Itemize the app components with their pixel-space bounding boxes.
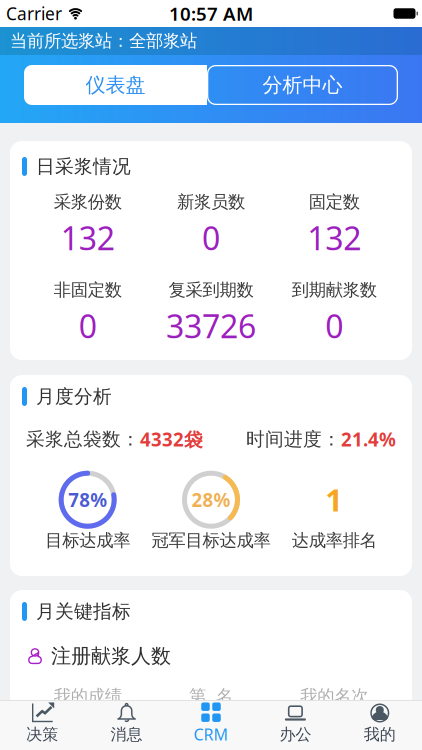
button[interactable]: 分析中心 <box>207 65 398 105</box>
staticText: 非固定数 <box>54 279 122 301</box>
staticText: 0 <box>325 305 343 347</box>
staticText: 冠军目标达成率 <box>151 530 270 551</box>
staticText: 1 <box>325 479 343 520</box>
staticText: 28% <box>191 487 230 512</box>
staticText: 78% <box>68 487 107 512</box>
staticText: 办公 <box>279 724 311 744</box>
staticText: 达成率排名 <box>292 530 377 551</box>
staticText: Carrier <box>6 2 62 25</box>
staticText: 仪表盘 <box>85 73 145 97</box>
staticText: 4332袋 <box>140 427 203 452</box>
staticText: 采浆总袋数： <box>26 428 140 451</box>
staticText: 注册献浆人数 <box>51 644 171 668</box>
staticText: 新浆员数 <box>177 191 245 213</box>
staticText: 33726 <box>166 305 256 347</box>
staticText: 0 <box>79 305 97 347</box>
button[interactable]: 办公 <box>253 703 338 744</box>
staticText: 复采到期数 <box>168 279 253 301</box>
staticText: 132 <box>307 217 361 259</box>
button[interactable]: 仪表盘 <box>24 65 207 105</box>
staticText: 我的成绩 <box>54 685 122 707</box>
staticText: 时间进度： <box>246 428 341 451</box>
staticText: 当前所选浆站：全部浆站 <box>10 30 197 52</box>
staticText: 决策 <box>26 724 58 744</box>
staticText: 月关键指标 <box>36 600 131 623</box>
staticText: 分析中心 <box>262 73 342 97</box>
staticText: 第 名 <box>189 685 233 707</box>
staticText: 月度分析 <box>36 385 112 408</box>
staticText: 采浆份数 <box>54 191 122 213</box>
button[interactable]: CRM <box>169 703 253 745</box>
staticText: 我的 <box>364 724 396 744</box>
staticText: 我的名次 <box>300 685 368 707</box>
staticText: 10:57 AM <box>169 1 253 26</box>
staticText: 日采浆情况 <box>36 155 131 178</box>
staticText: 固定数 <box>309 191 360 213</box>
button[interactable]: 消息 <box>84 703 169 744</box>
button[interactable]: 决策 <box>0 703 84 744</box>
staticText: 21.4% <box>341 427 396 452</box>
staticText: 0 <box>202 217 220 259</box>
staticText: 消息 <box>111 724 143 744</box>
staticText: CRM <box>193 724 228 745</box>
staticText: 到期献浆数 <box>292 279 377 301</box>
staticText: 132 <box>61 217 115 259</box>
staticText: 目标达成率 <box>45 530 130 551</box>
button[interactable]: 我的 <box>338 703 422 744</box>
